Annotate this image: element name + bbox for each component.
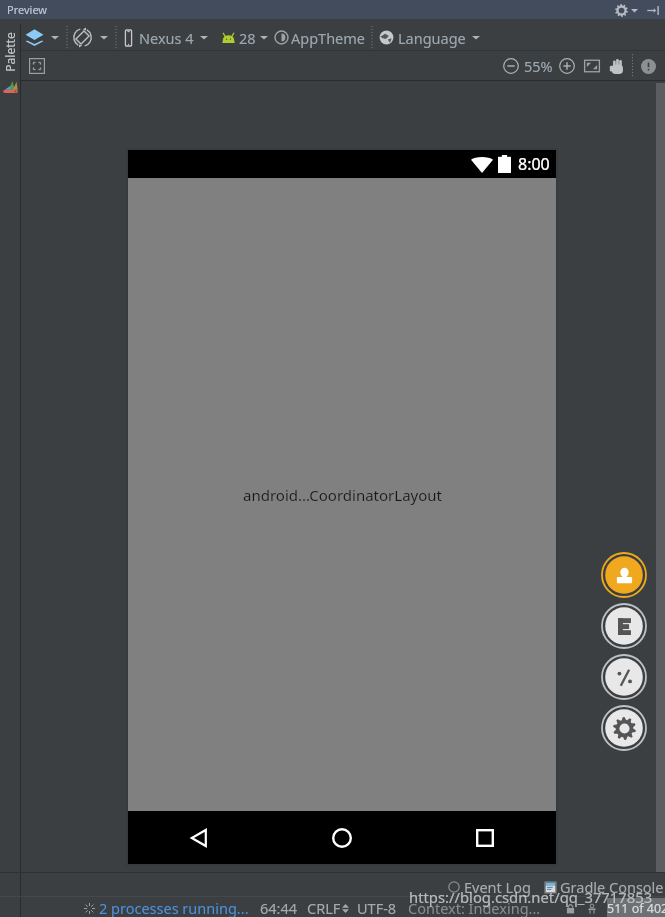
staticText: CRLF	[307, 898, 341, 917]
staticText: Preview	[7, 2, 48, 17]
staticText: Nexus 4	[139, 28, 194, 48]
button[interactable]: Orientation options	[95, 26, 113, 49]
button[interactable]: Zoom in	[556, 55, 578, 77]
button[interactable]: Language	[374, 26, 485, 49]
button[interactable]: Recents	[413, 811, 556, 864]
button[interactable]: Home	[270, 811, 413, 864]
button[interactable]: Zoom to fit	[581, 55, 603, 77]
staticText: 511 of 402	[607, 900, 665, 917]
button[interactable]: 28	[214, 26, 270, 49]
button[interactable]: Back	[128, 811, 270, 864]
staticText: https://blog.csdn.net/qq_37717853	[409, 887, 653, 907]
button[interactable]: Nexus 4	[118, 26, 214, 49]
button[interactable]: Zoom out	[500, 55, 522, 77]
staticText: Context: Indexing...	[408, 898, 541, 917]
button[interactable]: Design mode	[22, 26, 46, 49]
staticText: 55%	[524, 56, 553, 76]
button[interactable]: Options	[629, 5, 639, 15]
button[interactable]: Emulator	[601, 603, 647, 649]
button[interactable]: Palette	[2, 25, 18, 79]
button[interactable]: Hide panel	[645, 2, 661, 18]
staticText: 64:44	[260, 898, 298, 917]
staticText: android...CoordinatorLayout	[243, 485, 442, 505]
button[interactable]: Gradle Console	[560, 877, 664, 897]
button[interactable]: Fit to screen	[28, 57, 46, 75]
staticText: 28	[239, 28, 256, 48]
button[interactable]: Profile	[601, 552, 647, 598]
staticText: AppTheme	[291, 28, 366, 48]
staticText: 8:00	[518, 153, 550, 175]
staticText: Language	[398, 28, 466, 48]
button[interactable]: Percent	[601, 654, 647, 700]
button[interactable]: Event Log	[464, 877, 531, 897]
button[interactable]: Settings	[613, 2, 629, 18]
button[interactable]: Pan	[606, 55, 628, 77]
button[interactable]: AppTheme	[270, 26, 369, 49]
button[interactable]: 2 processes running...	[99, 898, 249, 917]
staticText: UTF-8	[357, 898, 397, 917]
button[interactable]: Settings	[601, 705, 647, 751]
staticText: Palette	[2, 25, 18, 79]
button[interactable]: Design mode options	[46, 26, 64, 49]
button[interactable]: Rotate	[69, 26, 95, 49]
button[interactable]: Issues	[637, 55, 659, 77]
